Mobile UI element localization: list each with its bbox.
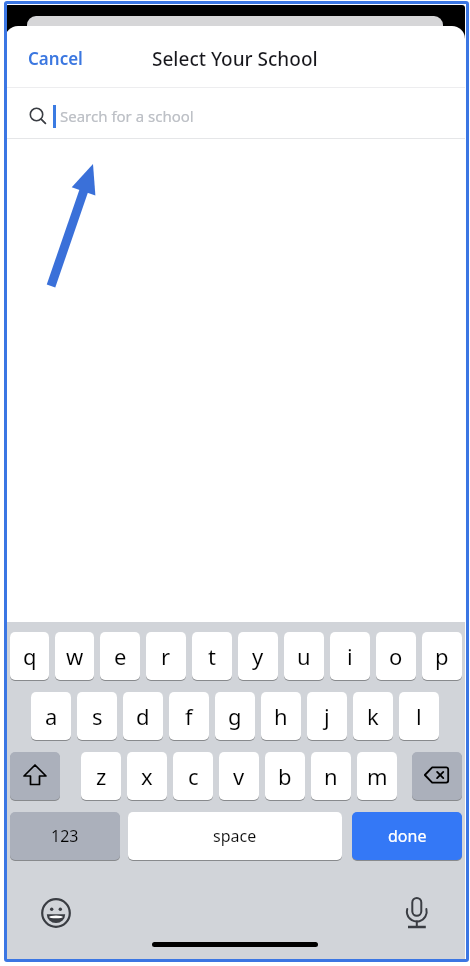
button[interactable]: b xyxy=(265,752,305,800)
staticText: t xyxy=(208,641,216,671)
staticText: space xyxy=(213,825,257,847)
staticText: d xyxy=(136,701,150,731)
staticText: 123 xyxy=(51,825,79,847)
staticText: c xyxy=(188,761,199,791)
button[interactable]: Search for a school xyxy=(5,88,465,138)
staticText: w xyxy=(66,641,84,671)
button[interactable]: done xyxy=(352,812,462,860)
button[interactable]: Cancel xyxy=(28,47,83,70)
staticText: Select Your School xyxy=(152,46,318,72)
staticText: u xyxy=(297,641,311,671)
staticText: a xyxy=(45,701,58,731)
staticText: l xyxy=(416,701,422,731)
staticText: g xyxy=(228,701,242,731)
staticText: h xyxy=(274,701,288,731)
staticText: Cancel xyxy=(28,47,83,70)
button[interactable]: j xyxy=(307,692,347,740)
button[interactable]: s xyxy=(77,692,117,740)
staticText: Search for a school xyxy=(60,106,194,126)
button[interactable] xyxy=(405,897,429,921)
staticText: x xyxy=(141,761,153,791)
staticText: r xyxy=(161,641,171,671)
button[interactable]: h xyxy=(261,692,301,740)
button[interactable]: q xyxy=(10,632,49,680)
button[interactable]: y xyxy=(238,632,278,680)
button[interactable] xyxy=(412,752,462,800)
button[interactable]: t xyxy=(192,632,232,680)
button[interactable] xyxy=(41,898,71,928)
button[interactable]: n xyxy=(311,752,351,800)
staticText: m xyxy=(367,761,388,791)
staticText: v xyxy=(233,761,245,791)
button[interactable]: space xyxy=(128,812,342,860)
staticText: k xyxy=(367,701,379,731)
staticText: done xyxy=(388,825,427,847)
button[interactable]: o xyxy=(376,632,416,680)
button[interactable]: i xyxy=(330,632,370,680)
button[interactable]: w xyxy=(55,632,94,680)
button[interactable]: p xyxy=(422,632,462,680)
button[interactable]: c xyxy=(173,752,213,800)
button[interactable]: g xyxy=(215,692,255,740)
staticText: n xyxy=(324,761,338,791)
staticText: e xyxy=(114,641,127,671)
staticText: j xyxy=(324,701,330,731)
staticText: z xyxy=(96,761,107,791)
staticText: p xyxy=(435,641,449,671)
button[interactable]: x xyxy=(127,752,167,800)
staticText: b xyxy=(278,761,292,791)
staticText: i xyxy=(347,641,353,671)
button[interactable]: m xyxy=(357,752,397,800)
button[interactable]: l xyxy=(399,692,439,740)
button[interactable]: 123 xyxy=(10,812,120,860)
button[interactable]: k xyxy=(353,692,393,740)
staticText: o xyxy=(389,641,403,671)
button[interactable]: z xyxy=(81,752,121,800)
button[interactable]: v xyxy=(219,752,259,800)
button[interactable]: u xyxy=(284,632,324,680)
button[interactable]: d xyxy=(123,692,163,740)
button[interactable]: r xyxy=(146,632,186,680)
staticText: f xyxy=(185,701,193,731)
staticText: y xyxy=(252,641,264,671)
button[interactable] xyxy=(10,752,60,800)
staticText: q xyxy=(23,641,37,671)
button[interactable]: f xyxy=(169,692,209,740)
staticText: s xyxy=(92,701,103,731)
button[interactable]: e xyxy=(100,632,140,680)
button[interactable]: a xyxy=(31,692,71,740)
